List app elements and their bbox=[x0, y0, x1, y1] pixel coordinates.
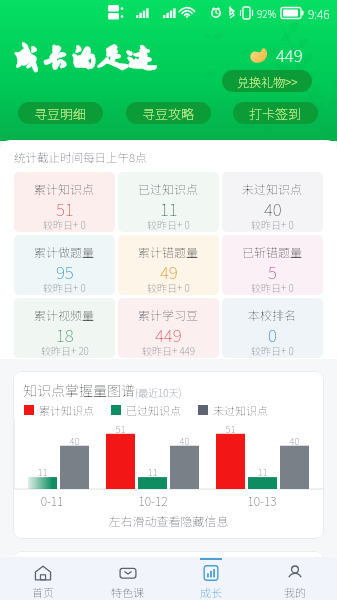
button[interactable]: 未过知识点 bbox=[222, 172, 323, 232]
staticText: 未过知识点 bbox=[242, 180, 303, 197]
staticText: 51 bbox=[212, 422, 249, 436]
staticText: 40 bbox=[56, 434, 93, 448]
staticText: 较昨日+ 0 bbox=[43, 217, 86, 231]
staticText: 累计学习豆 bbox=[138, 306, 199, 323]
staticText: 未过知识点 bbox=[213, 402, 268, 418]
button[interactable]: 我的 bbox=[253, 557, 337, 600]
staticText: 兑换礼物>> bbox=[237, 73, 298, 90]
staticText: 我的 bbox=[284, 584, 306, 600]
staticText: 较昨日+ 0 bbox=[251, 217, 294, 231]
staticText: 特色课 bbox=[111, 584, 144, 600]
staticText: 累计知识点 bbox=[34, 180, 95, 197]
staticText: 首页 bbox=[32, 584, 54, 600]
button[interactable]: 累计视频量 bbox=[14, 298, 115, 358]
staticText: 打卡签到 bbox=[249, 104, 302, 123]
staticText: 较昨日+ 0 bbox=[147, 217, 190, 231]
staticText: 49 bbox=[160, 259, 178, 284]
staticText: 0 bbox=[268, 322, 277, 347]
staticText: 较昨日+ 0 bbox=[251, 280, 294, 294]
staticText: 9:46 bbox=[308, 5, 330, 22]
staticText: 已过知识点 bbox=[138, 180, 199, 197]
staticText: 18 bbox=[56, 322, 74, 347]
staticText: 51 bbox=[56, 196, 74, 221]
staticText: 5 bbox=[268, 259, 277, 284]
button[interactable]: 本校排名 bbox=[222, 298, 323, 358]
staticText: 40 bbox=[166, 434, 203, 448]
staticText: 寻豆攻略 bbox=[142, 104, 195, 123]
staticText: 成长的足迹 bbox=[12, 42, 157, 74]
staticText: 51 bbox=[102, 422, 139, 436]
button[interactable]: 寻豆攻略 bbox=[126, 102, 211, 124]
staticText: 较昨日+ 0 bbox=[147, 280, 190, 294]
staticText: 11 bbox=[160, 196, 178, 221]
staticText: 左右滑动查看隐藏信息 bbox=[13, 512, 324, 529]
staticText: 成长 bbox=[200, 584, 222, 600]
staticText: 40 bbox=[276, 434, 313, 448]
button[interactable]: 已过知识点 bbox=[118, 172, 219, 232]
staticText: 0-11 bbox=[27, 492, 77, 509]
button[interactable]: 特色课 bbox=[85, 557, 169, 600]
button[interactable]: 已斩错题量 bbox=[222, 235, 323, 295]
staticText: 累计知识点 bbox=[39, 402, 94, 418]
button[interactable]: 累计做题量 bbox=[14, 235, 115, 295]
staticText: 较昨日+ 0 bbox=[251, 343, 294, 357]
staticText: 已斩错题量 bbox=[242, 243, 303, 260]
staticText: 知识点掌握量图谱 bbox=[23, 380, 135, 400]
staticText: 449 bbox=[276, 42, 303, 67]
staticText: 累计做题量 bbox=[34, 243, 95, 260]
staticText: 92% bbox=[257, 6, 277, 20]
staticText: 449 bbox=[155, 322, 182, 347]
staticText: 11 bbox=[134, 465, 171, 479]
staticText: 已过知识点 bbox=[126, 402, 181, 418]
staticText: 11 bbox=[244, 465, 281, 479]
staticText: 成长的足迹 bbox=[12, 42, 157, 74]
staticText: 95 bbox=[56, 259, 74, 284]
staticText: 10-12 bbox=[128, 492, 178, 509]
staticText: 11 bbox=[24, 465, 61, 479]
staticText: (最近10天) bbox=[135, 385, 182, 399]
staticText: 累计错题量 bbox=[138, 243, 199, 260]
button[interactable]: 打卡签到 bbox=[233, 102, 318, 124]
button[interactable]: 首页 bbox=[0, 557, 85, 600]
staticText: 本校排名 bbox=[248, 306, 297, 323]
staticText: 较昨日+ 449 bbox=[142, 343, 196, 357]
button[interactable]: 累计错题量 bbox=[118, 235, 219, 295]
staticText: 40 bbox=[264, 196, 282, 221]
button[interactable]: 兑换礼物>> bbox=[222, 70, 312, 92]
staticText: 10-13 bbox=[237, 492, 287, 509]
button[interactable]: 累计知识点 bbox=[14, 172, 115, 232]
staticText: 较昨日+ 20 bbox=[41, 343, 89, 357]
staticText: 寻豆明细 bbox=[34, 104, 87, 123]
staticText: 统计截止时间每日上午8点 bbox=[14, 149, 147, 166]
button[interactable]: 寻豆明细 bbox=[18, 102, 103, 124]
staticText: 累计视频量 bbox=[34, 306, 95, 323]
button[interactable]: 累计学习豆 bbox=[118, 298, 219, 358]
staticText: 较昨日+ 0 bbox=[43, 280, 86, 294]
button[interactable]: 成长 bbox=[169, 557, 253, 600]
